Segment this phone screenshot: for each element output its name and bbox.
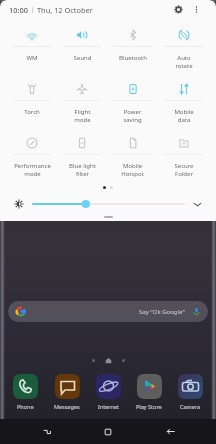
- staticText: Play Store: [136, 403, 162, 410]
- button[interactable]: Play Store: [136, 374, 162, 410]
- staticText: Say "Ok Google": [139, 308, 185, 316]
- staticText: Torch: [24, 108, 40, 116]
- button[interactable]: Expand: [192, 199, 203, 210]
- staticText: Mobile Hotspot: [121, 162, 144, 178]
- button[interactable]: Flight mode: [57, 72, 107, 126]
- button[interactable]: Say "Ok Google": [8, 301, 208, 322]
- staticText: Secure Folder: [174, 162, 194, 178]
- button[interactable]: More options: [190, 3, 203, 16]
- staticText: Performance mode: [14, 162, 51, 178]
- button[interactable]: Blue light filter: [57, 126, 107, 180]
- button[interactable]: Phone: [13, 374, 38, 410]
- button[interactable]: Internet: [96, 374, 121, 410]
- staticText: Power saving: [123, 108, 142, 124]
- button[interactable]: Camera: [178, 374, 203, 410]
- staticText: Bluetooth: [119, 54, 147, 62]
- button[interactable]: Power saving: [107, 72, 158, 126]
- button[interactable]: Torch: [7, 72, 57, 126]
- button[interactable]: Home: [93, 419, 123, 444]
- staticText: Thu, 12 October: [37, 5, 93, 15]
- button[interactable]: Mobile data: [158, 72, 209, 126]
- button[interactable]: WM: [7, 18, 57, 72]
- button[interactable]: Mobile Hotspot: [107, 126, 158, 180]
- button[interactable]: Auto rotate: [158, 18, 209, 72]
- button[interactable]: Back: [155, 419, 185, 444]
- button[interactable]: Performance mode: [7, 126, 57, 180]
- staticText: Mobile data: [174, 108, 194, 124]
- staticText: Internet: [98, 403, 120, 410]
- staticText: Auto rotate: [175, 54, 193, 70]
- button[interactable]: Bluetooth: [107, 18, 158, 72]
- staticText: Sound: [73, 54, 92, 62]
- staticText: Phone: [17, 403, 34, 410]
- staticText: Blue light filter: [69, 162, 96, 178]
- staticText: Messages: [54, 403, 80, 410]
- staticText: Camera: [180, 403, 201, 410]
- button[interactable]: Recents: [32, 419, 62, 444]
- staticText: WM: [26, 54, 38, 62]
- button[interactable]: Settings: [170, 1, 187, 18]
- button[interactable]: Sound: [57, 18, 107, 72]
- button[interactable]: Secure Folder: [158, 126, 209, 180]
- staticText: 10:00: [9, 5, 28, 15]
- staticText: Flight mode: [74, 108, 91, 124]
- button[interactable]: Messages: [54, 374, 80, 410]
